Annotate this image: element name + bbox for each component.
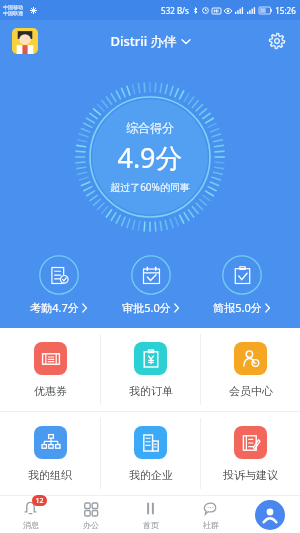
staticText: 我的组织 <box>28 468 72 482</box>
button[interactable]: 审批5.0分 <box>114 252 187 318</box>
button[interactable]: 优惠券 <box>0 328 100 411</box>
staticText: 12 <box>35 496 44 506</box>
staticText: 532 B/s <box>161 5 189 16</box>
button[interactable]: Profile avatar <box>12 28 38 54</box>
staticText: 审批5.0分 <box>122 300 171 315</box>
button[interactable]: 投诉与建议 <box>201 412 300 495</box>
button[interactable]: 我的 <box>240 496 300 533</box>
button[interactable]: 我的企业 <box>101 412 200 495</box>
button[interactable]: 办公 <box>60 496 120 533</box>
button[interactable]: 我的订单 <box>101 328 200 411</box>
staticText: 会员中心 <box>229 384 273 398</box>
staticText: 我的企业 <box>129 468 173 482</box>
staticText: 考勤4.7分 <box>30 300 79 315</box>
staticText: 简报5.0分 <box>213 300 262 315</box>
button[interactable]: Settings <box>264 28 290 54</box>
staticText: 消息 <box>23 520 39 530</box>
button[interactable]: 首页 <box>120 496 180 533</box>
staticText: 优惠券 <box>34 384 67 398</box>
staticText: 办公 <box>83 520 99 530</box>
staticText: 社群 <box>203 520 219 530</box>
staticText: 综合得分 <box>126 120 174 135</box>
staticText: 4.9分 <box>117 139 183 176</box>
button[interactable]: 社群 <box>180 496 240 533</box>
staticText: Distrii 办伴 <box>110 32 177 50</box>
staticText: 超过了60%的同事 <box>110 180 190 194</box>
staticText: 我的订单 <box>129 384 173 398</box>
staticText: 投诉与建议 <box>223 468 278 482</box>
button[interactable]: Distrii 办伴 <box>104 28 196 54</box>
button[interactable]: 12 <box>0 496 60 533</box>
staticText: 15:26 <box>275 5 296 16</box>
button[interactable]: 会员中心 <box>201 328 300 411</box>
staticText: 中国联通 <box>3 10 23 16</box>
button[interactable]: 我的组织 <box>0 412 100 495</box>
button[interactable]: 考勤4.7分 <box>22 252 95 318</box>
staticText: 首页 <box>143 520 159 530</box>
staticText: 中国移动 <box>3 4 23 10</box>
button[interactable]: 简报5.0分 <box>205 252 278 318</box>
